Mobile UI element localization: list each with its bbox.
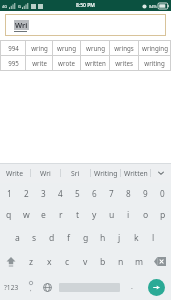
staticText: i	[127, 209, 130, 221]
button[interactable]: 994	[0, 41, 171, 55]
staticText: writing	[144, 59, 165, 67]
button[interactable]	[56, 279, 122, 295]
staticText: c	[65, 256, 70, 268]
button[interactable]: More suggestions	[151, 163, 171, 183]
button[interactable]: 6	[86, 183, 103, 203]
button[interactable]: Shift	[0, 249, 22, 274]
button[interactable]: f	[60, 226, 77, 249]
staticText: G	[18, 4, 21, 9]
button[interactable]: g	[77, 226, 94, 249]
staticText: 9	[143, 188, 148, 199]
button[interactable]: i	[120, 203, 137, 226]
staticText: 4G	[2, 4, 8, 9]
button[interactable]: Sri	[61, 163, 90, 183]
staticText: t	[76, 209, 80, 221]
staticText: 994	[8, 44, 19, 52]
staticText: f	[67, 232, 70, 244]
staticText: Write	[6, 169, 24, 178]
button[interactable]: Write	[0, 163, 30, 183]
button[interactable]: 5	[69, 183, 86, 203]
button[interactable]: 995	[0, 56, 171, 70]
staticText: g	[83, 232, 89, 244]
staticText: 4	[58, 188, 63, 199]
staticText: 2	[24, 188, 29, 199]
button[interactable]: 7	[103, 183, 120, 203]
button[interactable]: s	[26, 226, 43, 249]
staticText: wringing	[142, 44, 168, 52]
staticText: written	[85, 59, 106, 67]
staticText: 6	[92, 188, 97, 199]
staticText: k	[134, 232, 139, 244]
button[interactable]: k	[128, 226, 145, 249]
staticText: Wri	[15, 20, 28, 30]
staticText: ,	[30, 285, 32, 293]
staticText: 8	[126, 188, 131, 199]
button[interactable]: Written	[121, 163, 150, 183]
button[interactable]: 2	[18, 183, 35, 203]
button[interactable]: y	[86, 203, 103, 226]
staticText: b	[100, 256, 106, 268]
button[interactable]: w	[18, 203, 35, 226]
staticText: p	[160, 209, 166, 221]
button[interactable]: Emoji	[23, 274, 39, 300]
button[interactable]: z	[22, 249, 40, 274]
staticText: wrung	[57, 44, 76, 52]
staticText: Writing	[94, 169, 118, 178]
staticText: 7	[109, 188, 114, 199]
button[interactable]: d	[43, 226, 60, 249]
staticText: 5	[75, 188, 80, 199]
staticText: wrote	[58, 59, 75, 67]
staticText: v	[83, 256, 88, 268]
button[interactable]: x	[40, 249, 58, 274]
button[interactable]: 1	[0, 183, 18, 203]
staticText: q	[6, 209, 12, 221]
staticText: write	[32, 59, 47, 67]
staticText: 995	[8, 59, 19, 67]
staticText: 3	[41, 188, 46, 199]
staticText: m	[135, 256, 144, 268]
button[interactable]: Backspace	[148, 249, 171, 274]
staticText: o	[143, 209, 149, 221]
button[interactable]: Change language	[39, 274, 56, 300]
button[interactable]: ?123	[0, 274, 23, 300]
staticText: e	[41, 209, 46, 221]
button[interactable]: a	[9, 226, 26, 249]
button[interactable]: Writing	[91, 163, 120, 183]
staticText: w	[23, 209, 30, 221]
staticText: u	[109, 209, 115, 221]
button[interactable]: j	[111, 226, 128, 249]
button[interactable]: p	[154, 203, 171, 226]
button[interactable]: l	[145, 226, 162, 249]
button[interactable]: u	[103, 203, 120, 226]
staticText: z	[29, 256, 34, 268]
button[interactable]: Wri	[5, 14, 166, 36]
staticText: 84%	[149, 4, 157, 9]
button[interactable]: t	[69, 203, 86, 226]
button[interactable]: Enter	[141, 274, 171, 300]
button[interactable]: m	[130, 249, 148, 274]
button[interactable]: 3	[35, 183, 52, 203]
button[interactable]: 8	[120, 183, 137, 203]
staticText: ?123	[4, 283, 19, 292]
button[interactable]: v	[76, 249, 94, 274]
button[interactable]: c	[58, 249, 76, 274]
button[interactable]: 4	[52, 183, 69, 203]
staticText: x	[47, 256, 52, 268]
button[interactable]: e	[35, 203, 52, 226]
button[interactable]: n	[112, 249, 130, 274]
staticText: a	[15, 232, 20, 244]
staticText: n	[118, 256, 124, 268]
button[interactable]: 0	[154, 183, 171, 203]
staticText: y	[92, 209, 97, 221]
button[interactable]: Wri	[31, 163, 60, 183]
staticText: Wri	[40, 169, 51, 178]
staticText: Sri	[71, 169, 80, 178]
button[interactable]: q	[0, 203, 18, 226]
button[interactable]: r	[52, 203, 69, 226]
button[interactable]: 9	[137, 183, 154, 203]
button[interactable]: b	[94, 249, 112, 274]
staticText: 1	[7, 188, 12, 199]
button[interactable]: h	[94, 226, 111, 249]
button[interactable]: o	[137, 203, 154, 226]
